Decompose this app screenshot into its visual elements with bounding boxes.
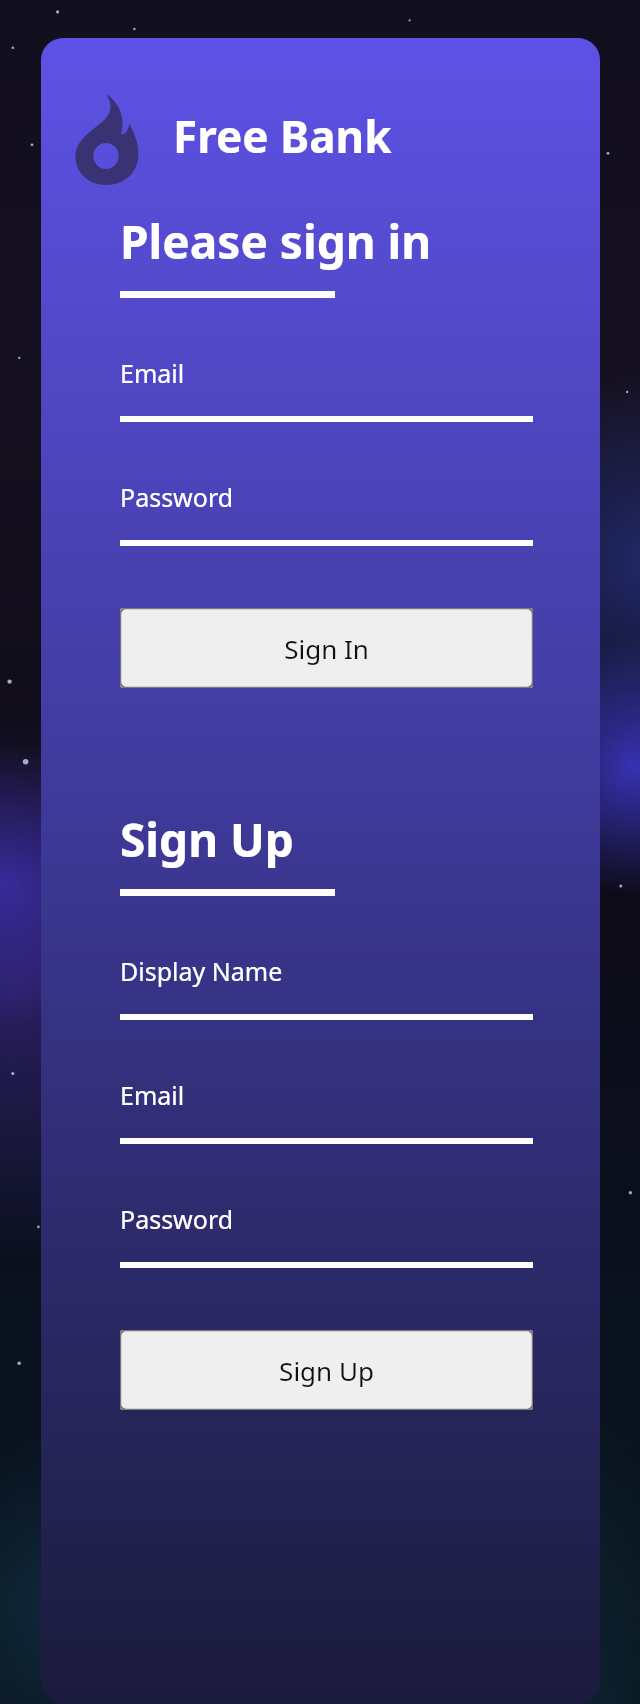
button[interactable]: Password bbox=[120, 1202, 533, 1268]
staticText: Sign Up bbox=[279, 1353, 374, 1388]
button[interactable]: Display Name bbox=[120, 954, 533, 1020]
button[interactable]: Email bbox=[120, 1078, 533, 1144]
staticText: Email bbox=[120, 1078, 185, 1112]
staticText: Password bbox=[120, 480, 234, 514]
staticText: Sign Up bbox=[120, 808, 294, 871]
staticText: Display Name bbox=[120, 954, 283, 988]
other: Free Bank logo bbox=[61, 86, 151, 186]
staticText: Please sign in bbox=[120, 210, 432, 273]
staticText: Email bbox=[120, 356, 185, 390]
button[interactable]: Sign Up bbox=[120, 1330, 533, 1410]
staticText: Sign In bbox=[284, 631, 369, 666]
staticText: Free Bank bbox=[173, 106, 392, 166]
button[interactable]: Password bbox=[120, 480, 533, 546]
staticText: Password bbox=[120, 1202, 234, 1236]
button[interactable]: Email bbox=[120, 356, 533, 422]
button[interactable]: Sign In bbox=[120, 608, 533, 688]
